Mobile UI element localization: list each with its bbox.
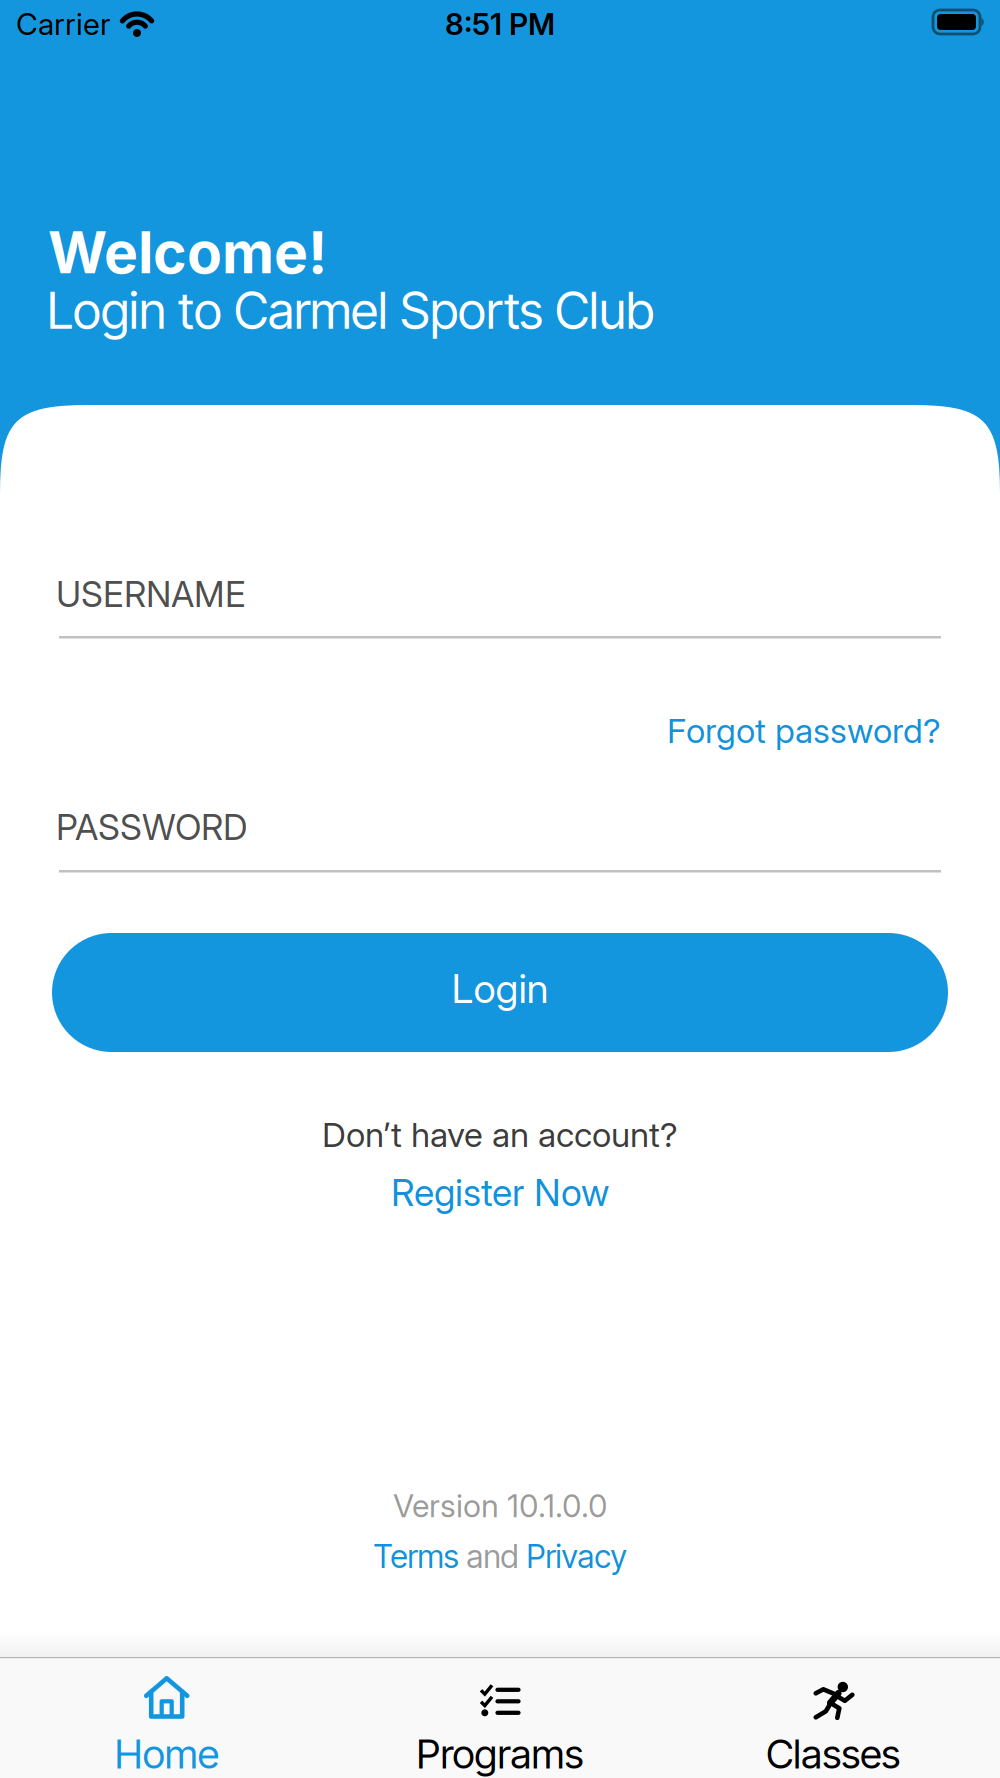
staticText: Welcome! — [48, 218, 327, 287]
button[interactable]: Login — [52, 933, 948, 1052]
staticText: PASSWORD — [56, 806, 248, 848]
button[interactable]: Privacy — [526, 1537, 626, 1576]
staticText: 8:51 PM — [445, 6, 555, 42]
staticText: Forgot password? — [667, 710, 941, 751]
button[interactable]: Programs — [333, 1658, 667, 1778]
staticText: Terms — [373, 1537, 458, 1576]
staticText: Register Now — [391, 1170, 609, 1215]
staticText: Classes — [766, 1730, 900, 1778]
staticText: Login to Carmel Sports Club — [47, 280, 654, 341]
staticText: Carrier — [16, 6, 111, 42]
button[interactable]: Terms — [373, 1537, 458, 1576]
staticText: Don’t have an account? — [322, 1114, 678, 1155]
staticText: Login — [451, 964, 548, 1013]
button[interactable]: Home — [0, 1658, 333, 1778]
staticText: Version 10.1.0.0 — [393, 1487, 607, 1525]
staticText: Privacy — [526, 1537, 626, 1576]
staticText: and — [458, 1537, 526, 1576]
staticText: Programs — [416, 1730, 583, 1778]
button[interactable]: Forgot password? — [667, 710, 941, 751]
button[interactable]: Register Now — [391, 1170, 609, 1215]
staticText: USERNAME — [56, 573, 246, 615]
staticText: Home — [115, 1730, 219, 1778]
button[interactable]: Classes — [667, 1658, 1000, 1778]
